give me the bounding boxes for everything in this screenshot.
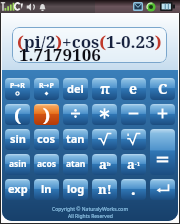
button[interactable]: Square root bbox=[92, 129, 117, 150]
staticText: a-1 bbox=[127, 155, 141, 173]
staticText: asin bbox=[9, 158, 27, 170]
staticText: ) bbox=[43, 104, 51, 124]
staticText: All Rights Reserved bbox=[68, 213, 113, 220]
button[interactable]: tan bbox=[63, 129, 88, 150]
button[interactable]: ln bbox=[34, 179, 59, 200]
staticText: R→P bbox=[39, 81, 54, 91]
button[interactable]: Divide bbox=[63, 104, 88, 125]
button[interactable]: Power bbox=[92, 154, 117, 175]
button[interactable]: Nth root bbox=[121, 129, 146, 150]
staticText: ln bbox=[41, 181, 52, 196]
staticText: ( bbox=[14, 104, 22, 124]
staticText: exp bbox=[8, 181, 28, 196]
other: Sound bbox=[26, 2, 35, 12]
button[interactable]: sin bbox=[5, 129, 30, 150]
button[interactable]: Open parenthesis bbox=[5, 104, 30, 125]
button[interactable]: atan bbox=[63, 154, 88, 175]
button[interactable]: Plus bbox=[150, 104, 175, 125]
staticText: acos bbox=[37, 158, 57, 170]
staticText: . bbox=[131, 179, 136, 199]
button[interactable]: Euler number bbox=[121, 78, 146, 100]
button[interactable]: asin bbox=[5, 154, 30, 175]
button[interactable]: Polar to rectangular bbox=[5, 78, 30, 100]
other: Alarm bbox=[38, 2, 47, 12]
button[interactable]: log bbox=[63, 179, 88, 200]
staticText: sin bbox=[10, 131, 26, 146]
button[interactable]: cos bbox=[34, 129, 59, 150]
button[interactable]: exp bbox=[5, 179, 30, 200]
staticText: ab bbox=[99, 155, 111, 173]
staticText: n! bbox=[98, 180, 112, 198]
staticText: e bbox=[129, 79, 138, 98]
other: Battery bbox=[160, 2, 175, 11]
staticText: Copyright © NaturalyWorks.com bbox=[52, 206, 129, 213]
other: Messages bbox=[133, 2, 143, 11]
staticText: atan bbox=[66, 158, 86, 170]
button[interactable]: Inverse bbox=[121, 154, 146, 175]
button[interactable]: Minus bbox=[121, 104, 146, 125]
staticText: log bbox=[67, 181, 85, 196]
button[interactable]: Pi bbox=[92, 78, 117, 100]
staticText: tan bbox=[66, 131, 85, 146]
staticText: (pi/2)+cos(1-0.23) bbox=[17, 30, 162, 53]
button[interactable]: Rectangular to polar bbox=[34, 78, 59, 100]
button[interactable]: Enter bbox=[150, 179, 175, 200]
other: Signal strength bbox=[1, 1, 12, 12]
button[interactable]: Multiply bbox=[92, 104, 117, 125]
staticText: π bbox=[100, 78, 110, 98]
button[interactable]: Close parenthesis bbox=[34, 104, 59, 125]
staticText: cos bbox=[37, 131, 56, 146]
button[interactable]: acos bbox=[34, 154, 59, 175]
button[interactable]: Decimal point bbox=[121, 179, 146, 200]
button[interactable]: Delete bbox=[63, 78, 88, 100]
button[interactable]: Clear bbox=[150, 78, 175, 100]
button[interactable]: Factorial bbox=[92, 179, 117, 200]
staticText: P→R bbox=[10, 81, 25, 91]
staticText: C bbox=[158, 79, 168, 98]
staticText: 1.7179106 bbox=[19, 43, 101, 63]
other: Connected bbox=[146, 2, 156, 12]
staticText: del bbox=[67, 81, 84, 96]
button[interactable]: Equals bbox=[150, 129, 175, 175]
other: Network bbox=[14, 1, 23, 12]
